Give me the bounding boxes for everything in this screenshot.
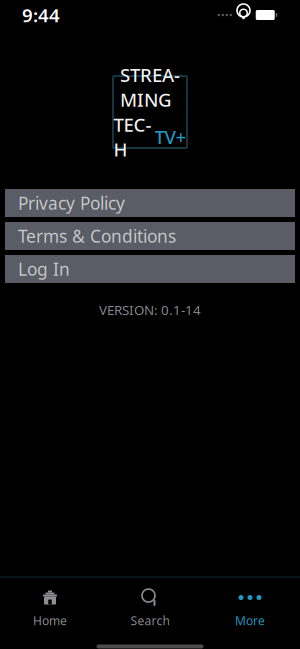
staticText: Log In: [18, 257, 70, 280]
staticText: STREAMING: [120, 62, 180, 112]
staticText: 9:44: [22, 3, 60, 27]
button[interactable]: More: [200, 585, 300, 630]
staticText: TV+: [154, 124, 186, 149]
button[interactable]: Terms & Conditions: [5, 222, 295, 250]
staticText: VERSION: 0.1-14: [99, 301, 201, 319]
button[interactable]: Privacy Policy: [5, 189, 295, 217]
button[interactable]: Log In: [5, 255, 295, 283]
staticText: Search: [130, 612, 169, 628]
staticText: Terms & Conditions: [18, 224, 176, 247]
staticText: TECH: [113, 112, 151, 162]
button[interactable]: Home: [0, 585, 100, 630]
staticText: More: [235, 612, 265, 628]
staticText: Privacy Policy: [18, 191, 125, 214]
staticText: Home: [33, 612, 67, 628]
button[interactable]: Search: [100, 585, 200, 630]
